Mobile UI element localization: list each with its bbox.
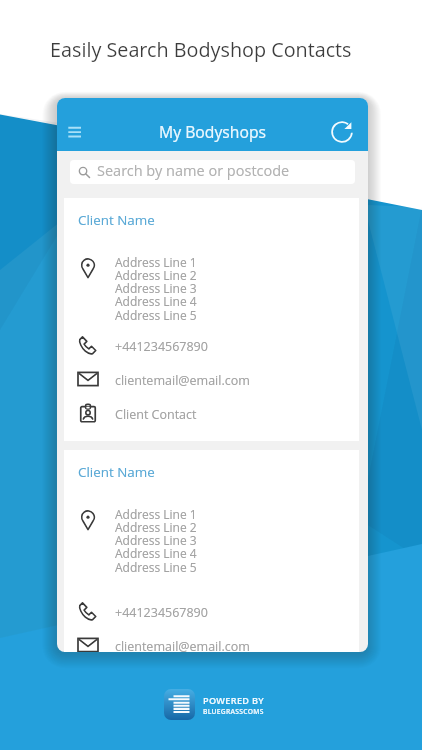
staticText: Search by name or postcode — [97, 161, 290, 181]
button[interactable]: Refresh — [326, 116, 358, 148]
staticText: My Bodyshops — [159, 121, 266, 142]
staticText: POWERED BY — [203, 694, 265, 706]
staticText: +441234567890 — [115, 338, 208, 355]
staticText: Address Line 1 — [115, 506, 197, 522]
staticText: Address Line 4 — [115, 545, 197, 561]
staticText: Address Line 3 — [115, 280, 197, 296]
staticText: Address Line 2 — [115, 267, 197, 283]
staticText: clientemail@email.com — [115, 372, 250, 389]
staticText: BLUEGRASSCOMS — [203, 707, 264, 716]
staticText: Address Line 5 — [115, 559, 197, 575]
button[interactable]: Client Name — [64, 198, 359, 441]
staticText: Client Name — [78, 211, 155, 229]
staticText: clientemail@email.com — [115, 638, 250, 652]
staticText: Client Name — [78, 463, 155, 481]
staticText: +441234567890 — [115, 604, 208, 621]
staticText: Address Line 2 — [115, 519, 197, 535]
staticText: Easily Search Bodyshop Contacts — [50, 36, 352, 63]
staticText: Address Line 3 — [115, 532, 197, 548]
button[interactable]: Menu — [57, 116, 92, 148]
staticText: Client Contact — [115, 406, 197, 423]
staticText: Address Line 5 — [115, 307, 197, 323]
button[interactable]: Client Name — [64, 450, 359, 652]
staticText: Address Line 1 — [115, 254, 197, 270]
staticText: Address Line 4 — [115, 293, 197, 309]
button[interactable]: Search by name or postcode — [70, 160, 355, 184]
